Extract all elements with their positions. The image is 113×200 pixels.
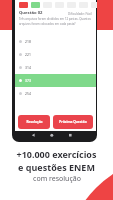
button[interactable]: 254	[15, 87, 96, 100]
button[interactable]: Resolução	[18, 115, 50, 129]
staticText: Próxima Questão	[59, 120, 87, 124]
staticText: e questões ENEM	[18, 161, 95, 173]
staticText: Três arquivos foram divididos em 12 past…	[19, 17, 92, 26]
staticText: 373	[25, 78, 31, 83]
staticText: Dificuldade: Fácil	[68, 12, 92, 16]
staticText: 221	[25, 52, 31, 57]
button[interactable]: Questão	[19, 2, 28, 8]
button[interactable]: Questão	[31, 2, 40, 8]
staticText: Questão 02	[19, 10, 43, 16]
button[interactable]: 218	[15, 35, 96, 48]
staticText: 218	[25, 39, 31, 44]
staticText: Resolução	[26, 120, 43, 124]
button[interactable]: 221	[15, 48, 96, 61]
button[interactable]: Próxima Questão	[53, 115, 93, 129]
staticText: 254	[25, 91, 31, 96]
staticText: com resolução	[33, 174, 81, 184]
button[interactable]: 373	[15, 74, 96, 87]
button[interactable]: 314	[15, 61, 96, 74]
staticText: 314	[25, 65, 31, 70]
staticText: +10.000 exercícios	[16, 148, 97, 160]
